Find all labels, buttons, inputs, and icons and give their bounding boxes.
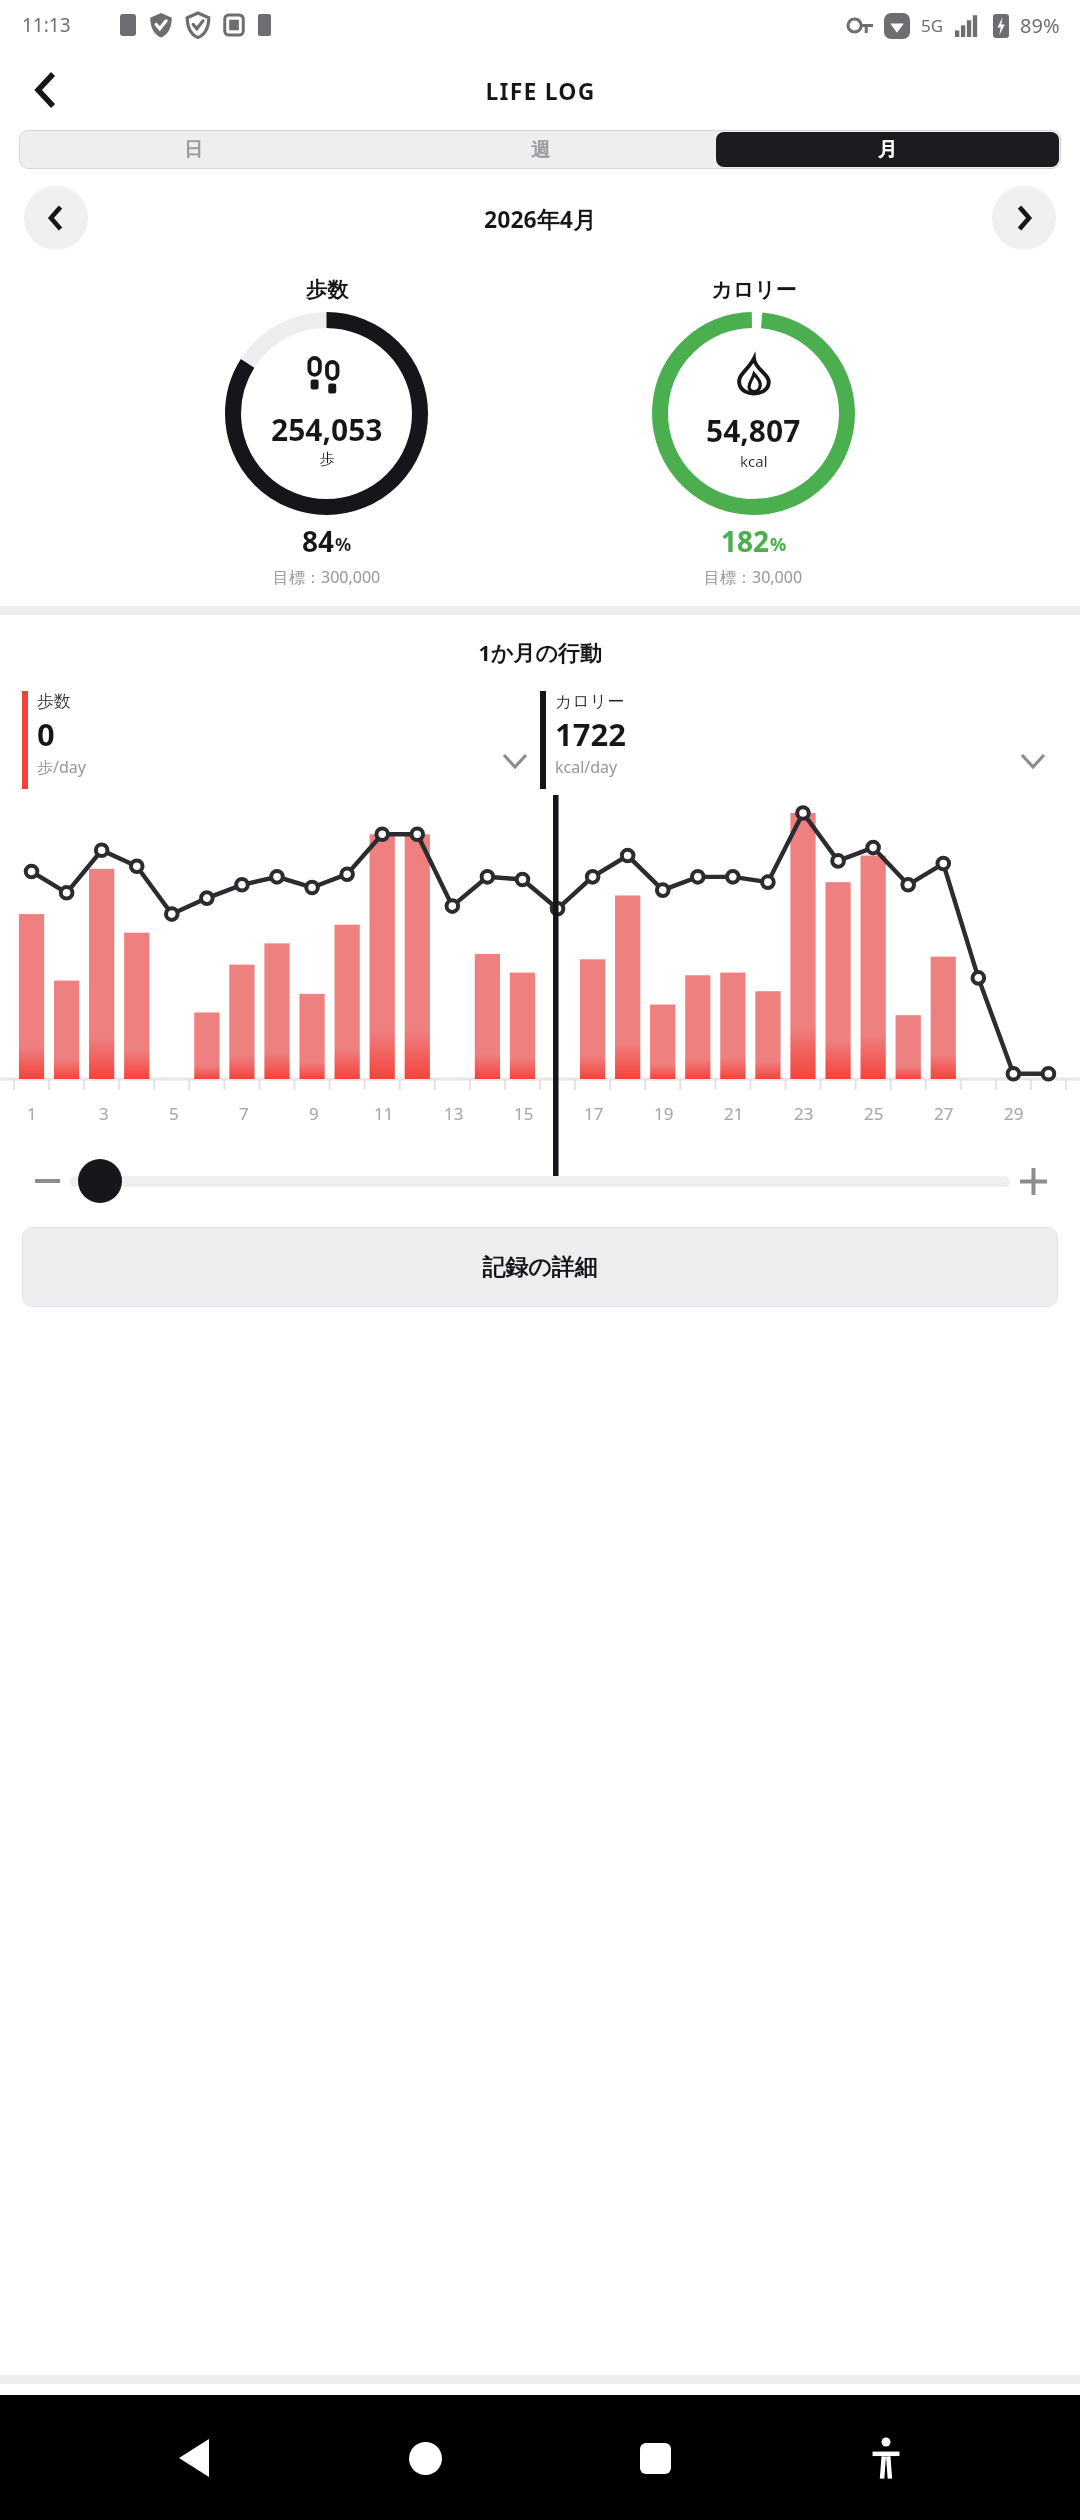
staticText: 歩/day: [37, 756, 86, 778]
staticText: 21: [724, 1102, 744, 1125]
staticText: 週: [531, 138, 550, 162]
staticText: 13: [444, 1102, 464, 1125]
button[interactable]: Previous month: [24, 186, 88, 250]
staticText: 目標：300,000: [273, 566, 381, 588]
staticText: 1か月の行動: [0, 637, 1080, 667]
button[interactable]: Home: [389, 2422, 461, 2494]
staticText: 19: [654, 1102, 674, 1125]
staticText: カロリー: [555, 691, 625, 712]
staticText: 89%: [1020, 12, 1060, 39]
staticText: 254,053: [271, 409, 383, 450]
staticText: 11: [374, 1102, 394, 1125]
button[interactable]: 歩数: [22, 691, 540, 789]
staticText: 3: [99, 1102, 109, 1125]
staticText: 9: [309, 1102, 319, 1125]
staticText: 25: [864, 1102, 884, 1125]
button[interactable]: 日: [21, 132, 365, 167]
staticText: 歩数: [306, 277, 348, 303]
staticText: 7: [239, 1102, 249, 1125]
staticText: 17: [584, 1102, 604, 1125]
button[interactable]: 週: [369, 132, 712, 167]
staticText: LIFE LOG: [485, 75, 596, 106]
staticText: kcal/day: [555, 756, 618, 778]
staticText: 目標：30,000: [704, 566, 803, 588]
staticText: 23: [794, 1102, 814, 1125]
button[interactable]: Next month: [992, 186, 1056, 250]
button[interactable]: Back: [16, 60, 76, 120]
button[interactable]: Recent apps: [619, 2422, 691, 2494]
staticText: kcal: [740, 451, 768, 471]
staticText: 15: [514, 1102, 534, 1125]
button[interactable]: 記録の詳細: [22, 1227, 1058, 1307]
staticText: 1: [27, 1102, 37, 1125]
staticText: 5: [169, 1102, 179, 1125]
staticText: 歩: [320, 450, 335, 469]
button[interactable]: カロリー: [540, 691, 1058, 789]
staticText: 0: [37, 713, 55, 755]
staticText: %: [770, 532, 787, 557]
button[interactable]: Chart zoom: [78, 1159, 122, 1203]
staticText: 29: [1004, 1102, 1024, 1125]
button[interactable]: Zoom in: [1010, 1158, 1056, 1204]
staticText: 54,807: [706, 410, 801, 451]
staticText: 1722: [555, 713, 626, 755]
staticText: 歩数: [37, 691, 71, 712]
staticText: 27: [934, 1102, 954, 1125]
staticText: 5G: [921, 14, 944, 37]
staticText: %: [335, 532, 352, 557]
staticText: 84: [302, 522, 335, 560]
button[interactable]: Zoom out: [24, 1158, 70, 1204]
staticText: 11:13: [22, 12, 71, 38]
staticText: 記録の詳細: [482, 1253, 598, 1282]
button[interactable]: Accessibility: [850, 2422, 922, 2494]
staticText: 日: [184, 138, 203, 162]
staticText: 2026年4月: [484, 203, 596, 234]
staticText: 182: [721, 522, 770, 560]
button[interactable]: Back: [158, 2422, 230, 2494]
button[interactable]: 月: [716, 132, 1059, 167]
staticText: 月: [878, 138, 897, 162]
staticText: カロリー: [711, 277, 797, 303]
